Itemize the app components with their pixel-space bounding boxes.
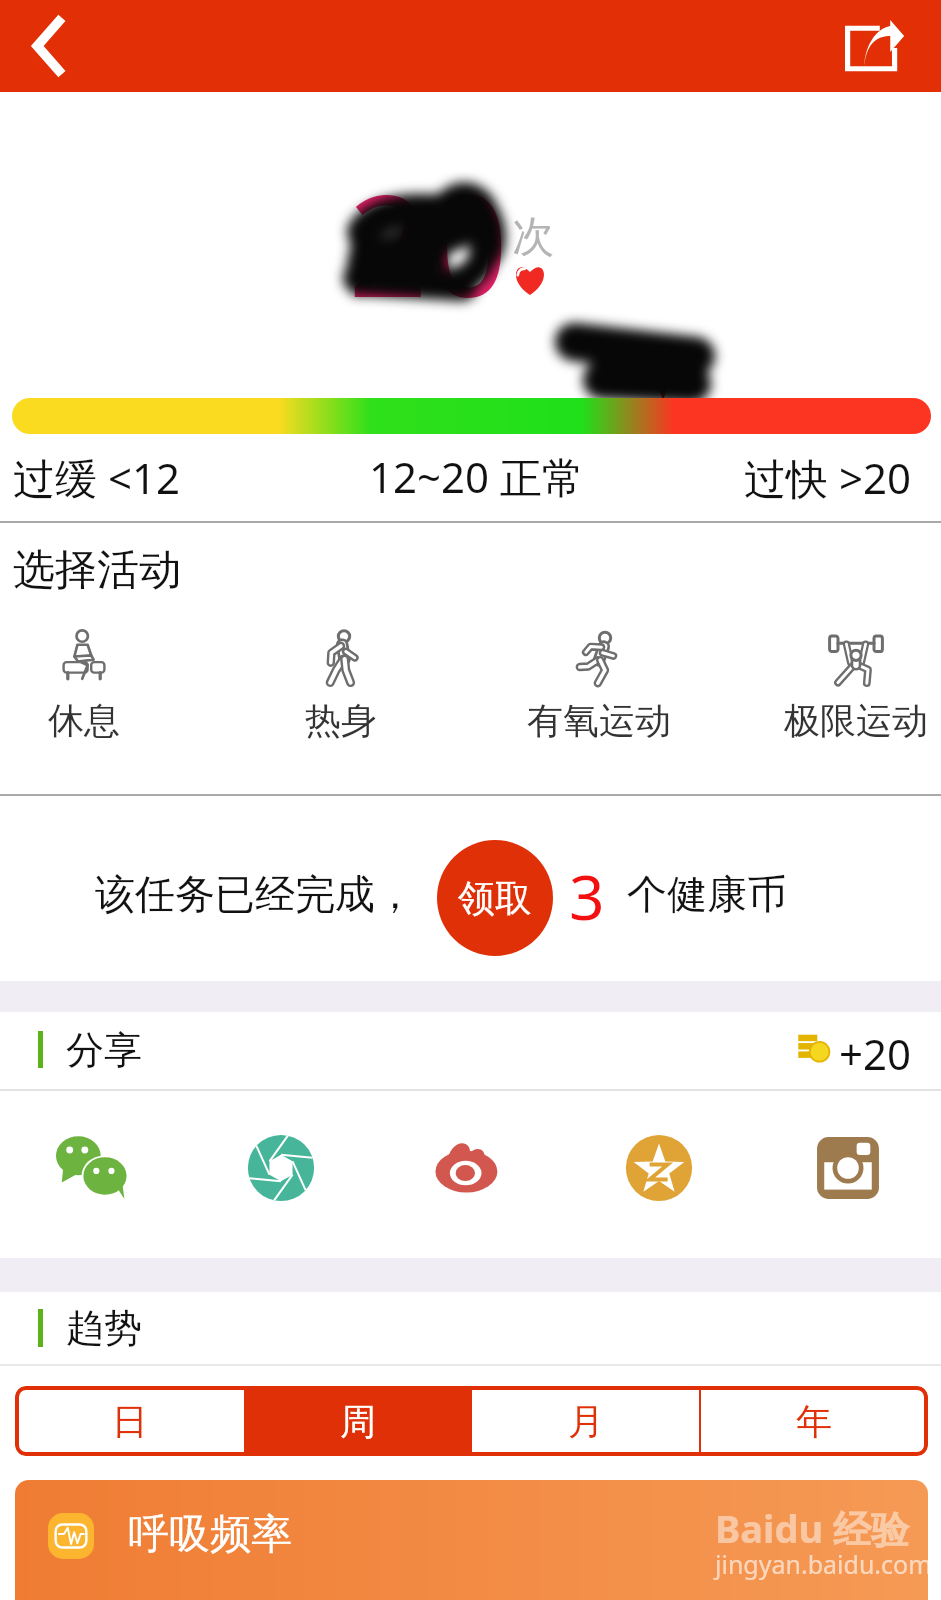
- staticText: 20: [348, 147, 509, 338]
- staticText: 有氧运动: [527, 698, 671, 743]
- button[interactable]: 相机: [231, 1118, 331, 1218]
- button[interactable]: Instagram: [798, 1118, 898, 1218]
- button[interactable]: QQ空间: [609, 1118, 709, 1218]
- staticText: 呼吸频率: [128, 1509, 292, 1561]
- button[interactable]: 月: [472, 1386, 700, 1456]
- button[interactable]: Share: [831, 4, 917, 88]
- staticText: 分享: [66, 1026, 142, 1074]
- button[interactable]: 休息: [0, 628, 189, 743]
- staticText: 过快 >20: [744, 449, 911, 506]
- staticText: 领取: [458, 875, 532, 922]
- staticText: 年: [796, 1399, 832, 1444]
- button[interactable]: Back: [8, 6, 88, 86]
- staticText: 选择活动: [13, 544, 181, 597]
- button[interactable]: 日: [15, 1386, 244, 1456]
- button[interactable]: 极限运动: [751, 628, 941, 743]
- button[interactable]: 有氧运动: [494, 628, 704, 743]
- button[interactable]: 领取: [437, 840, 553, 956]
- staticText: 该任务已经完成，: [95, 869, 415, 919]
- staticText: 3: [569, 854, 605, 938]
- button[interactable]: 热身: [236, 628, 446, 743]
- staticText: 过缓 <12: [13, 449, 180, 506]
- staticText: 休息: [48, 698, 120, 743]
- button[interactable]: 微信: [42, 1118, 142, 1218]
- staticText: Baidu 经验: [715, 1502, 909, 1554]
- staticText: jingyan.baidu.com: [715, 1547, 928, 1581]
- staticText: 12~20 正常: [369, 448, 585, 505]
- staticText: 周: [340, 1399, 376, 1444]
- button[interactable]: 年: [700, 1386, 928, 1456]
- staticText: 趋势: [66, 1304, 142, 1352]
- staticText: +20: [839, 1025, 912, 1082]
- button[interactable]: 周: [244, 1386, 472, 1456]
- button[interactable]: 微博: [420, 1118, 520, 1218]
- staticText: 次: [512, 211, 554, 264]
- staticText: 热身: [305, 698, 377, 743]
- staticText: 日: [112, 1399, 148, 1444]
- staticText: 个健康币: [627, 869, 787, 919]
- staticText: 月: [568, 1399, 604, 1444]
- staticText: 极限运动: [784, 698, 928, 743]
